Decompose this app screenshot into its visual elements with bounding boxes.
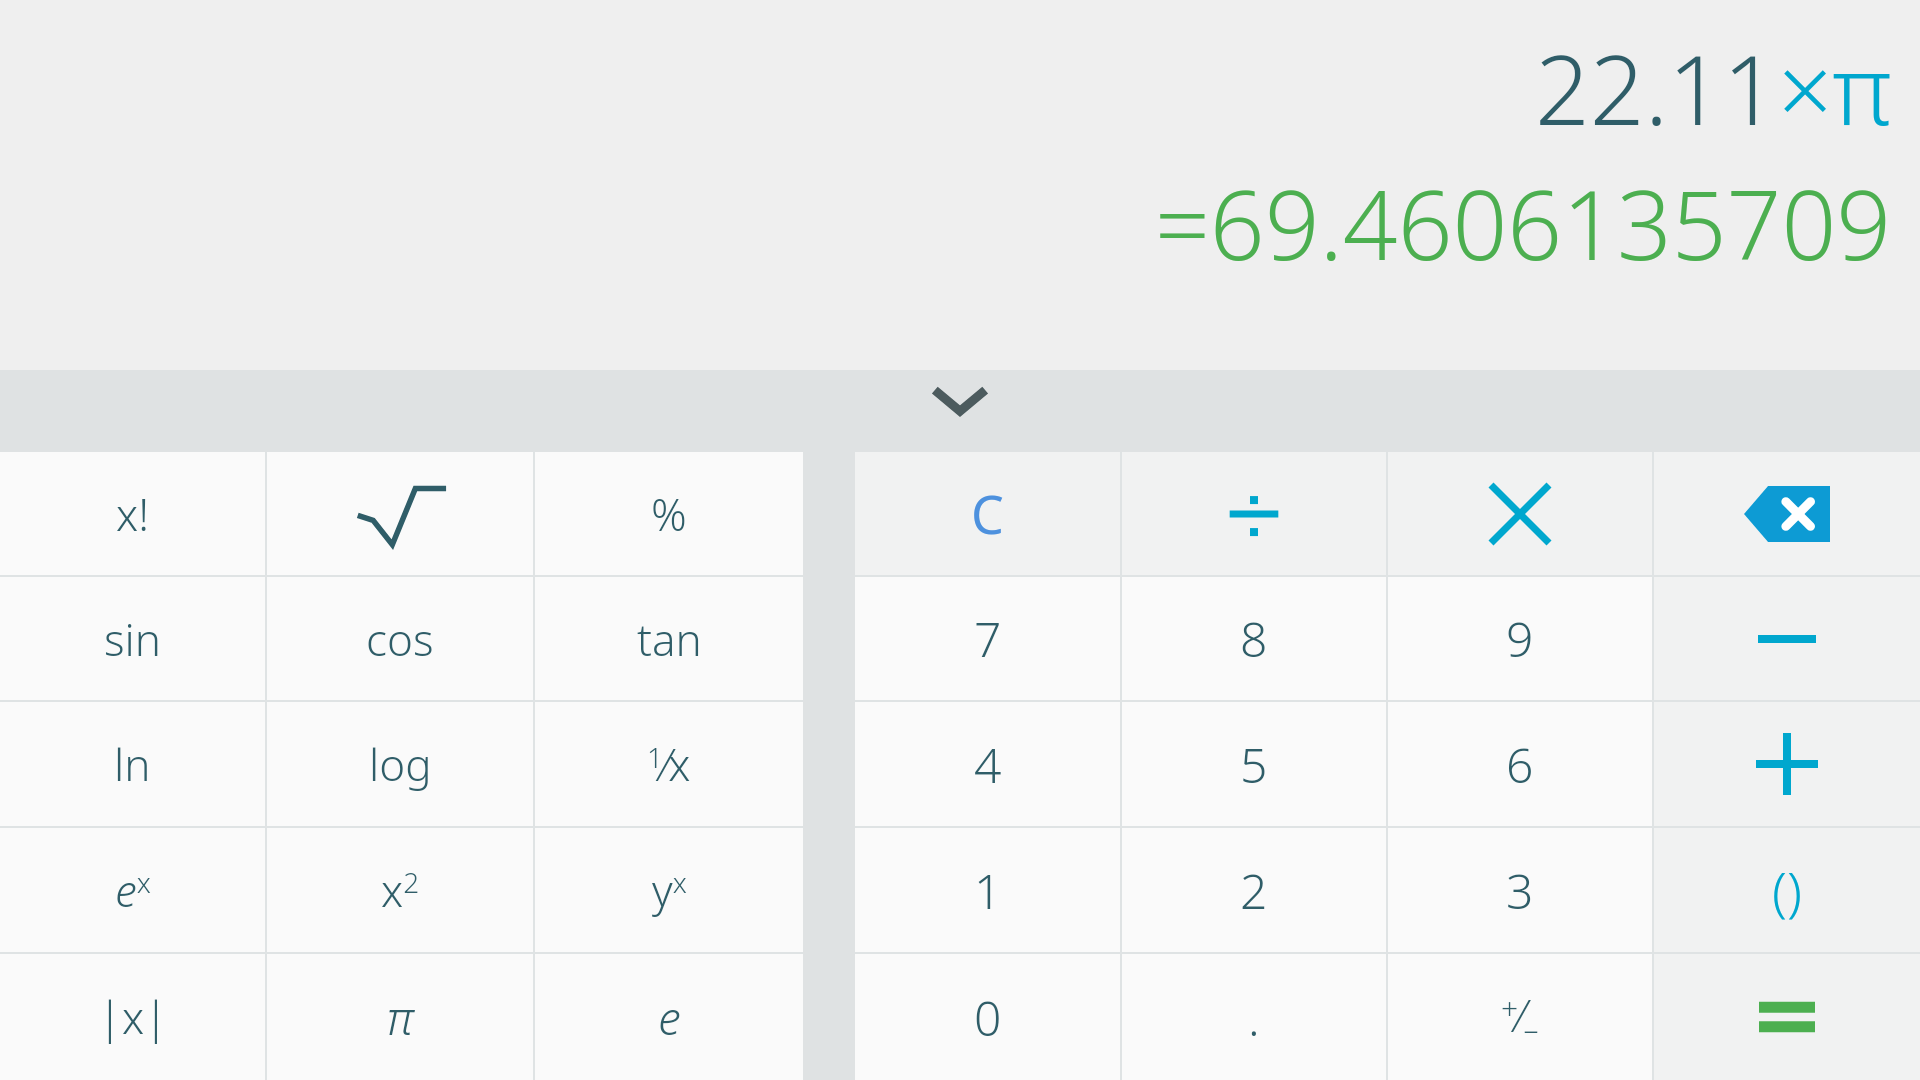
button[interactable]: paren (1654, 828, 1920, 952)
staticText: x! (116, 484, 149, 544)
button[interactable]: 9 (1388, 577, 1652, 700)
staticText: =69.4606135709 (1155, 157, 1892, 288)
button[interactable]: e^x (0, 828, 265, 952)
button[interactable]: del (1654, 452, 1920, 575)
staticText: +⁄– (1501, 985, 1539, 1049)
staticText: 3 (1506, 858, 1534, 923)
button[interactable]: e (535, 954, 803, 1080)
button[interactable]: 0 (855, 954, 1120, 1080)
button[interactable]: div (1122, 452, 1386, 575)
button[interactable]: pi (267, 954, 533, 1080)
staticText: x2 (381, 860, 420, 920)
staticText: |x| (98, 987, 168, 1047)
button[interactable]: 1 (855, 828, 1120, 952)
staticText: 2 (1240, 858, 1268, 923)
button[interactable]: y^x (535, 828, 803, 952)
staticText: 22.11×π (1535, 22, 1892, 153)
staticText: log (369, 734, 432, 794)
staticText: 0 (974, 985, 1002, 1050)
staticText: () (1772, 853, 1802, 927)
button[interactable]: 8 (1122, 577, 1386, 700)
staticText: 5 (1240, 732, 1268, 797)
button[interactable]: 6 (1388, 702, 1652, 826)
button[interactable]: 1/x (535, 702, 803, 826)
button[interactable]: 4 (855, 702, 1120, 826)
button[interactable]: % (535, 452, 803, 575)
button[interactable]: ln (0, 702, 265, 826)
button[interactable]: mul (1388, 452, 1652, 575)
staticText: 6 (1506, 732, 1534, 797)
staticText: π (387, 986, 414, 1049)
button[interactable]: 3 (1388, 828, 1652, 952)
staticText: 4 (974, 732, 1002, 797)
staticText: yx (652, 860, 687, 920)
button[interactable]: sin (0, 577, 265, 700)
button[interactable]: C (855, 452, 1120, 575)
staticText: 8 (1240, 606, 1268, 671)
staticText: . (1248, 985, 1260, 1050)
staticText: % (651, 484, 687, 544)
button[interactable]: tan (535, 577, 803, 700)
staticText: ln (114, 734, 151, 794)
button[interactable]: cos (267, 577, 533, 700)
staticText: 1⁄x (647, 734, 691, 794)
button[interactable]: 7 (855, 577, 1120, 700)
button[interactable]: Collapse pad (0, 370, 1920, 452)
staticText: e (658, 986, 681, 1049)
staticText: 1 (974, 858, 1002, 923)
staticText: 9 (1506, 606, 1534, 671)
button[interactable]: 5 (1122, 702, 1386, 826)
button[interactable]: |x| (0, 954, 265, 1080)
button[interactable]: 2 (1122, 828, 1386, 952)
staticText: C (971, 478, 1004, 549)
button[interactable]: sqrt (267, 452, 533, 575)
staticText: tan (637, 609, 702, 669)
staticText: cos (366, 609, 434, 669)
button[interactable]: log (267, 702, 533, 826)
staticText: 7 (974, 606, 1002, 671)
button[interactable]: . (1122, 954, 1386, 1080)
staticText: ex (115, 860, 151, 920)
button[interactable]: plus (1654, 702, 1920, 826)
button[interactable]: eq (1654, 954, 1920, 1080)
button[interactable]: x2 (267, 828, 533, 952)
button[interactable]: pm (1388, 954, 1652, 1080)
staticText: sin (104, 609, 161, 669)
button[interactable]: minus (1654, 577, 1920, 700)
button[interactable]: x! (0, 452, 265, 575)
